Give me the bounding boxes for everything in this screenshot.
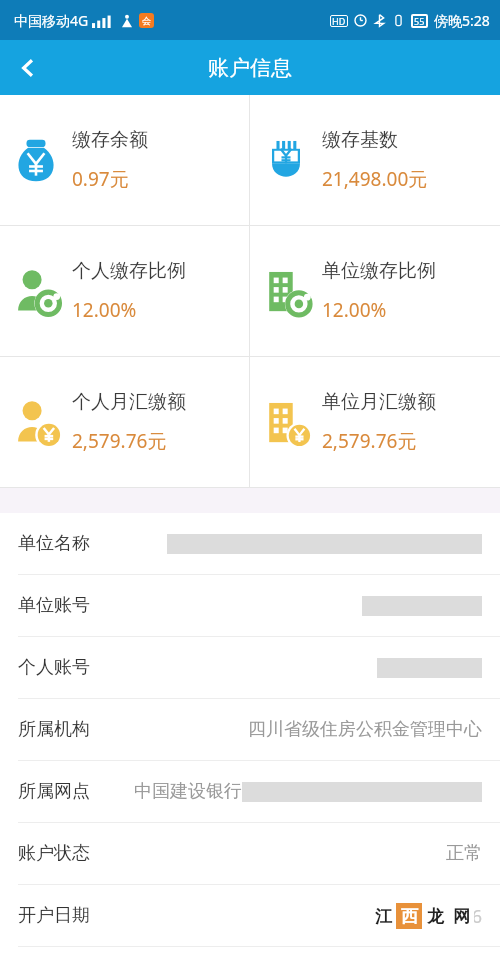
staticText: 2,579.76元: [72, 428, 167, 454]
staticText: 单位缴存比例: [322, 259, 436, 283]
button[interactable]: 缴存基数: [250, 95, 500, 225]
staticText: 龙: [427, 906, 444, 927]
button[interactable]: 个人缴存比例: [0, 226, 249, 356]
staticText: 账户状态: [18, 842, 90, 865]
staticText: 所属网点: [18, 780, 90, 803]
staticText: 个人账号: [18, 656, 90, 679]
button[interactable]: 所属网点: [0, 761, 500, 822]
button[interactable]: Back: [0, 40, 55, 95]
staticText: HD: [332, 15, 346, 27]
staticText: 个人月汇缴额: [72, 390, 186, 414]
staticText: 江: [375, 906, 392, 927]
staticText: 21,498.00元: [322, 166, 428, 192]
button[interactable]: 个人账号: [0, 637, 500, 698]
staticText: 单位月汇缴额: [322, 390, 436, 414]
button[interactable]: 账户状态: [0, 823, 500, 884]
staticText: 单位名称: [18, 532, 90, 555]
staticText: 2,579.76元: [322, 428, 417, 454]
staticText: 傍晚5:28: [434, 11, 490, 30]
staticText: 单位账号: [18, 594, 90, 617]
staticText: 缴存基数: [322, 128, 398, 152]
staticText: 所属机构: [18, 718, 90, 741]
button[interactable]: 开户日期: [0, 885, 500, 946]
button[interactable]: 单位缴存比例: [250, 226, 500, 356]
button[interactable]: 所属机构: [0, 699, 500, 760]
staticText: 网: [453, 906, 470, 927]
staticText: 12.00%: [72, 297, 137, 323]
staticText: 个人缴存比例: [72, 259, 186, 283]
staticText: 西: [401, 906, 418, 927]
staticText: 中国建设银行: [134, 780, 242, 803]
staticText: 55: [414, 15, 425, 27]
staticText: 会: [142, 15, 151, 26]
staticText: 中国移动4G: [14, 11, 89, 30]
button[interactable]: 个人月汇缴额: [0, 357, 249, 487]
button[interactable]: 缴存余额: [0, 95, 249, 225]
staticText: 缴存余额: [72, 128, 148, 152]
button[interactable]: 单位账号: [0, 575, 500, 636]
staticText: 四川省级住房公积金管理中心: [248, 718, 482, 741]
staticText: 2005-09-06: [388, 904, 482, 929]
staticText: 12.00%: [322, 297, 387, 323]
button[interactable]: 单位名称: [0, 513, 500, 574]
staticText: 开户日期: [18, 904, 90, 927]
staticText: 0.97元: [72, 166, 129, 192]
staticText: 正常: [446, 842, 482, 865]
staticText: 账户信息: [208, 55, 292, 81]
button[interactable]: 单位月汇缴额: [250, 357, 500, 487]
